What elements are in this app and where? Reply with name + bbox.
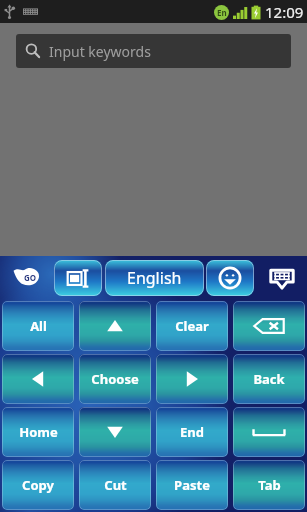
staticText: 12:09 [265, 2, 304, 22]
button[interactable]: Input keywords [16, 34, 291, 68]
button[interactable]: Left [2, 354, 74, 404]
staticText: Choose [91, 370, 139, 388]
button[interactable]: Emoji [206, 260, 254, 296]
staticText: Cut [104, 476, 127, 494]
button[interactable]: Back [233, 354, 305, 404]
staticText: English [127, 267, 182, 289]
button[interactable]: Up [79, 301, 151, 351]
staticText: Tab [258, 476, 281, 494]
button[interactable]: Clear [156, 301, 228, 351]
button[interactable]: Space [233, 407, 305, 457]
staticText: Copy [22, 476, 54, 494]
button[interactable]: GO Keyboard menu [13, 265, 41, 287]
staticText: Input keywords [49, 42, 151, 61]
button[interactable]: Backspace [233, 301, 305, 351]
button[interactable]: Choose [79, 354, 151, 404]
button[interactable]: Copy [2, 460, 74, 510]
button[interactable]: Down [79, 407, 151, 457]
button[interactable]: English [105, 260, 204, 296]
button[interactable]: Right [156, 354, 228, 404]
staticText: Home [19, 423, 58, 441]
staticText: Clear [175, 317, 209, 335]
button[interactable]: Tab [233, 460, 305, 510]
staticText: Paste [174, 476, 210, 494]
staticText: En [217, 7, 227, 18]
button[interactable]: End [156, 407, 228, 457]
button[interactable]: All [2, 301, 74, 351]
staticText: All [30, 317, 47, 335]
button[interactable]: Home [2, 407, 74, 457]
button[interactable]: Paste [156, 460, 228, 510]
button[interactable]: Cut [79, 460, 151, 510]
staticText: End [180, 423, 204, 441]
staticText: GO [24, 272, 37, 283]
button[interactable]: Input method [54, 260, 102, 296]
button[interactable]: Hide keyboard [266, 262, 298, 294]
staticText: Back [253, 370, 285, 388]
